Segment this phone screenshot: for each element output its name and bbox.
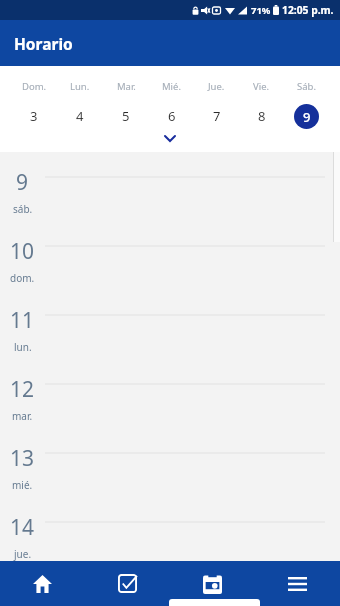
staticText: jue. — [14, 547, 32, 561]
staticText: Dom. — [22, 80, 47, 93]
staticText: 5 — [122, 107, 130, 125]
staticText: mié. — [12, 478, 33, 492]
button[interactable]: 9 — [284, 102, 329, 130]
button[interactable]: 12 — [0, 359, 340, 428]
button[interactable]: Inicio — [0, 561, 85, 606]
staticText: 12:05 p.m. — [282, 3, 334, 17]
staticText: 12 — [10, 375, 35, 404]
staticText: 4 — [76, 107, 84, 125]
button[interactable]: Calendario — [170, 561, 255, 606]
staticText: 9 — [303, 108, 311, 126]
staticText: Lun. — [70, 80, 90, 93]
button[interactable]: 7 — [194, 102, 239, 130]
staticText: 13 — [10, 444, 35, 473]
button[interactable]: 11 — [0, 290, 340, 359]
button[interactable]: 10 — [0, 221, 340, 290]
button[interactable]: 6 — [149, 102, 194, 130]
staticText: 11 — [10, 306, 35, 335]
button[interactable]: 5 — [103, 102, 149, 130]
button[interactable]: Expandir calendario — [150, 132, 190, 148]
staticText: 8 — [258, 107, 266, 125]
staticText: 6 — [168, 107, 176, 125]
staticText: mar. — [12, 409, 33, 423]
staticText: Mié. — [162, 80, 181, 93]
staticText: Vie. — [253, 80, 270, 93]
staticText: 10 — [10, 237, 35, 266]
button[interactable]: 4 — [57, 102, 103, 130]
button[interactable]: 8 — [239, 102, 284, 130]
staticText: dom. — [10, 271, 35, 285]
staticText: Jue. — [208, 80, 225, 93]
staticText: 14 — [10, 513, 35, 542]
staticText: Sáb. — [297, 80, 316, 93]
staticText: Horario — [14, 33, 73, 54]
button[interactable]: 3 — [11, 102, 57, 130]
staticText: lun. — [14, 340, 32, 354]
button[interactable]: Tareas — [85, 561, 170, 606]
staticText: 7 — [213, 107, 221, 125]
button[interactable]: 14 — [0, 497, 340, 561]
button[interactable]: 9 — [0, 152, 340, 221]
button[interactable]: Menú — [255, 561, 340, 606]
staticText: sáb. — [13, 202, 33, 216]
staticText: 3 — [30, 107, 38, 125]
staticText: 71% — [251, 4, 271, 17]
staticText: 9 — [16, 168, 29, 197]
staticText: Mar. — [117, 80, 136, 93]
button[interactable]: 13 — [0, 428, 340, 497]
